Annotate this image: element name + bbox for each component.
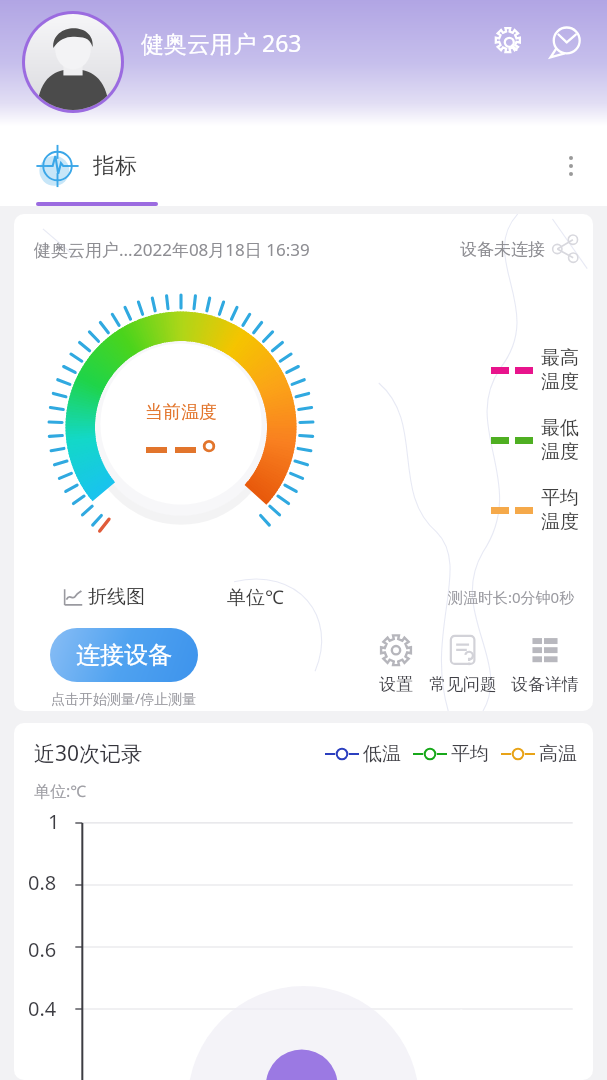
staticText: 2022年08月18日 16:39 [133, 238, 310, 261]
button[interactable]: 低温 [325, 742, 401, 766]
button[interactable]: 高温 [501, 742, 577, 766]
staticText: 0.8 [28, 869, 57, 896]
staticText: 高温 [539, 742, 577, 766]
button[interactable]: 折线图 [62, 585, 145, 609]
staticText: 健奥云用户... [34, 238, 133, 261]
staticText: 点击开始测量/停止测量 [51, 689, 197, 708]
staticText: 常见问题 [429, 674, 497, 695]
staticText: 连接设备 [76, 640, 172, 670]
staticText: 设备详情 [511, 674, 579, 695]
staticText: 温度 [541, 440, 579, 464]
staticText: 当前温度 [145, 401, 217, 424]
button[interactable]: Device details [511, 632, 579, 695]
staticText: 1 [48, 808, 60, 835]
button[interactable]: 平均 [413, 742, 489, 766]
button[interactable]: Settings [377, 632, 415, 695]
staticText: 最低 [541, 416, 579, 440]
staticText: 平均 [451, 742, 489, 766]
staticText: 单位:℃ [34, 780, 87, 802]
staticText: 设置 [379, 674, 413, 695]
button[interactable]: Messages [543, 20, 589, 66]
button[interactable]: Share [547, 230, 585, 268]
staticText: 指标 [93, 152, 137, 180]
button[interactable]: 单位℃ [227, 584, 284, 610]
button[interactable]: FAQ [429, 632, 497, 695]
staticText: 平均 [541, 486, 579, 510]
staticText: 健奥云用户 263 [141, 27, 302, 58]
staticText: 0.4 [28, 995, 57, 1022]
button[interactable]: 指标 [34, 141, 137, 191]
staticText: 测温时长:0分钟0秒 [448, 587, 575, 607]
staticText: 温度 [541, 510, 579, 534]
button[interactable]: More options [549, 144, 593, 188]
staticText: 低温 [363, 742, 401, 766]
staticText: 温度 [541, 370, 579, 394]
staticText: 设备未连接 [460, 239, 545, 260]
staticText: 最高 [541, 346, 579, 370]
staticText: 0.6 [28, 936, 57, 963]
button[interactable]: Profile avatar [25, 14, 121, 110]
staticText: 折线图 [88, 585, 145, 609]
staticText: 近30次记录 [34, 739, 143, 768]
button[interactable]: 连接设备 [50, 628, 198, 682]
button[interactable]: Settings [487, 20, 533, 66]
